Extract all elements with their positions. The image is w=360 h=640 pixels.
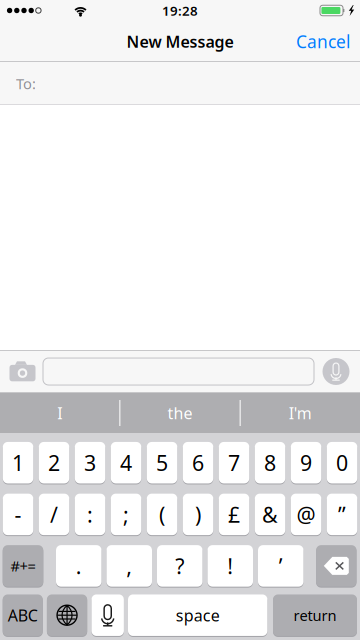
button[interactable]: 9 bbox=[291, 441, 321, 484]
button[interactable]: 1 bbox=[3, 441, 33, 484]
button[interactable]: 3 bbox=[75, 441, 105, 484]
button[interactable]: 8 bbox=[255, 441, 285, 484]
staticText: - bbox=[15, 500, 22, 528]
staticText: 0 bbox=[336, 448, 348, 477]
staticText: the bbox=[167, 402, 192, 424]
button[interactable]: return bbox=[273, 594, 357, 636]
button[interactable]: 0 bbox=[327, 441, 357, 484]
button[interactable]: @ bbox=[291, 493, 321, 536]
button[interactable]: ” bbox=[327, 493, 357, 536]
staticText: : bbox=[87, 500, 93, 528]
staticText: ABC bbox=[8, 605, 38, 626]
staticText: ( bbox=[159, 500, 165, 528]
staticText: return bbox=[293, 605, 336, 625]
button[interactable]: - bbox=[3, 493, 33, 536]
staticText: I bbox=[57, 402, 62, 424]
button[interactable]: ! bbox=[207, 545, 253, 587]
staticText: 3 bbox=[84, 448, 96, 477]
button[interactable]: 6 bbox=[183, 441, 213, 484]
button[interactable]: & bbox=[255, 493, 285, 536]
button[interactable]: space bbox=[128, 594, 267, 636]
staticText: space bbox=[176, 605, 220, 626]
button[interactable]: Delete bbox=[316, 545, 356, 587]
button[interactable]: Next keyboard bbox=[47, 594, 87, 636]
button[interactable]: I bbox=[0, 393, 119, 433]
button[interactable]: ) bbox=[183, 493, 213, 536]
staticText: 19:28 bbox=[162, 2, 198, 19]
staticText: 4 bbox=[120, 448, 132, 477]
staticText: I'm bbox=[289, 402, 312, 424]
button[interactable]: : bbox=[75, 493, 105, 536]
staticText: @ bbox=[297, 500, 316, 528]
staticText: 7 bbox=[228, 448, 240, 477]
staticText: 9 bbox=[300, 448, 312, 477]
button[interactable]: Camera bbox=[2, 350, 43, 393]
button[interactable]: £ bbox=[219, 493, 249, 536]
button[interactable]: 4 bbox=[111, 441, 141, 484]
staticText: / bbox=[50, 500, 58, 528]
button[interactable]: , bbox=[106, 545, 152, 587]
staticText: 2 bbox=[48, 448, 60, 477]
staticText: , bbox=[126, 552, 132, 580]
button[interactable]: #+= bbox=[3, 545, 43, 587]
button[interactable]: / bbox=[39, 493, 69, 536]
staticText: To: bbox=[16, 74, 36, 93]
staticText: ” bbox=[338, 500, 346, 528]
button[interactable]: ; bbox=[111, 493, 141, 536]
staticText: ) bbox=[195, 500, 201, 528]
staticText: . bbox=[76, 552, 82, 580]
button[interactable]: . bbox=[56, 545, 101, 587]
staticText: ? bbox=[175, 552, 184, 580]
button[interactable]: Dictate bbox=[91, 594, 124, 636]
button[interactable]: the bbox=[120, 393, 240, 433]
button[interactable]: I'm bbox=[241, 393, 360, 433]
button[interactable]: ABC bbox=[3, 594, 43, 636]
button[interactable]: Dictate bbox=[314, 350, 358, 393]
staticText: ! bbox=[227, 552, 233, 580]
staticText: £ bbox=[228, 500, 240, 528]
staticText: New Message bbox=[126, 31, 233, 52]
button[interactable]: Cancel bbox=[286, 21, 360, 62]
button[interactable]: 7 bbox=[219, 441, 249, 484]
button[interactable]: ’ bbox=[258, 545, 303, 587]
button[interactable]: ( bbox=[147, 493, 177, 536]
button[interactable]: 5 bbox=[147, 441, 177, 484]
staticText: 1 bbox=[12, 448, 24, 477]
staticText: #+= bbox=[10, 556, 35, 576]
button[interactable]: ? bbox=[157, 545, 202, 587]
staticText: ; bbox=[123, 500, 129, 528]
staticText: 8 bbox=[264, 448, 276, 477]
staticText: ’ bbox=[279, 552, 283, 580]
button[interactable]: 2 bbox=[39, 441, 69, 484]
staticText: 5 bbox=[156, 448, 168, 477]
staticText: Cancel bbox=[296, 30, 350, 53]
staticText: & bbox=[262, 500, 278, 528]
staticText: 6 bbox=[192, 448, 204, 477]
